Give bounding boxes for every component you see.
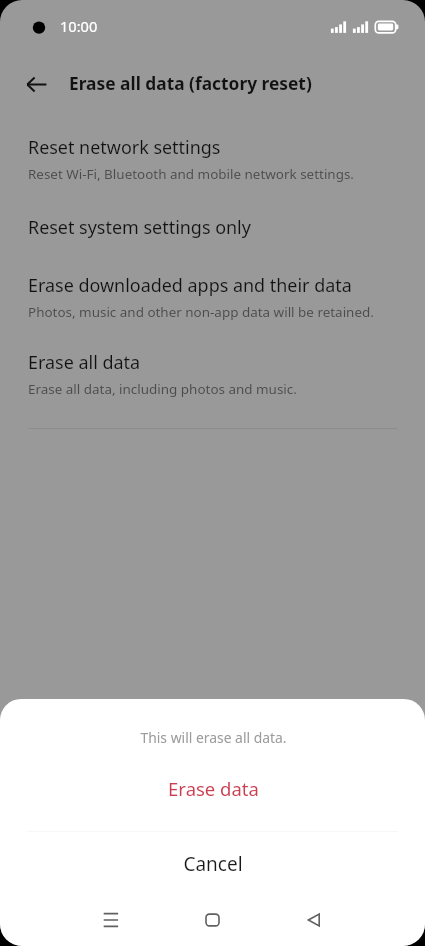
staticText: Reset network settings <box>28 135 221 159</box>
staticText: Cancel <box>183 851 243 877</box>
staticText: Erase all data <box>28 350 141 374</box>
button[interactable]: Cancel <box>0 831 425 897</box>
staticText: Erase all data, including photos and mus… <box>28 380 297 398</box>
button[interactable] <box>0 261 425 338</box>
staticText: Reset system settings only <box>28 215 251 239</box>
button[interactable]: Back <box>289 898 337 946</box>
button[interactable]: Recent apps <box>87 898 135 946</box>
staticText: Photos, music and other non-app data wil… <box>28 303 374 321</box>
staticText: Erase downloaded apps and their data <box>28 273 352 297</box>
staticText: Erase data <box>168 776 259 801</box>
staticText: This will erase all data. <box>1 728 425 747</box>
button[interactable]: Back <box>22 68 54 100</box>
button[interactable]: Home <box>188 898 236 946</box>
staticText: Erase all data (factory reset) <box>69 71 312 95</box>
staticText: 10:00 <box>60 16 98 36</box>
button[interactable] <box>0 338 425 415</box>
button[interactable] <box>0 123 425 203</box>
button[interactable]: Erase data <box>0 760 425 817</box>
button[interactable] <box>0 203 425 261</box>
staticText: Reset Wi-Fi, Bluetooth and mobile networ… <box>28 165 354 183</box>
